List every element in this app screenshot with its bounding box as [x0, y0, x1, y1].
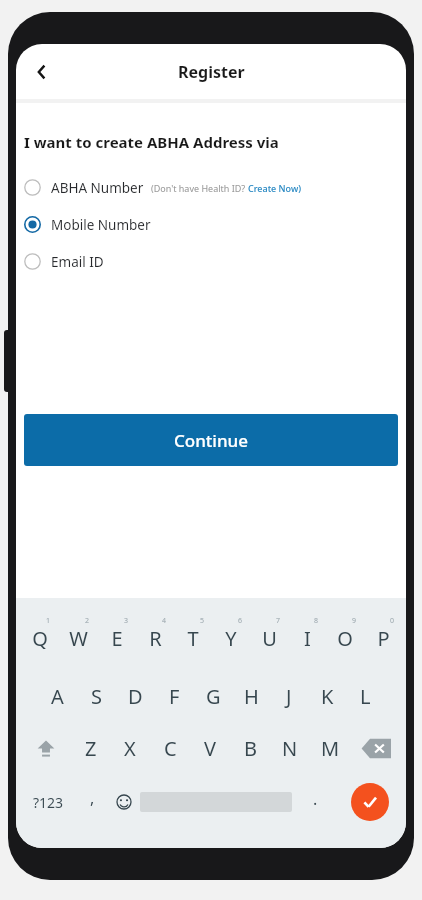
staticText: 8	[314, 616, 319, 626]
staticText: E	[111, 625, 123, 652]
button[interactable]: Create Now)	[248, 182, 301, 194]
button[interactable]: Continue	[24, 414, 398, 466]
staticText: Z	[85, 735, 97, 762]
button[interactable]: 8	[288, 614, 326, 670]
staticText: 0	[390, 616, 395, 626]
button[interactable]: H	[232, 670, 270, 722]
button[interactable]: Emoji	[108, 774, 140, 830]
button[interactable]: 0	[364, 614, 402, 670]
staticText: 1	[46, 616, 51, 626]
staticText: J	[286, 683, 292, 710]
staticText: N	[282, 735, 298, 762]
staticText: P	[377, 625, 390, 652]
staticText: S	[91, 683, 102, 710]
staticText: H	[244, 683, 259, 710]
staticText: ABHA Number	[51, 179, 144, 197]
button[interactable]: Z	[71, 722, 110, 774]
button[interactable]: Mobile Number	[16, 206, 406, 243]
staticText: F	[169, 683, 180, 710]
staticText: U	[262, 625, 277, 652]
button[interactable]: Space	[140, 774, 292, 830]
staticText: Mobile Number	[51, 216, 151, 234]
button[interactable]: 3	[98, 614, 136, 670]
staticText: 2	[85, 616, 90, 626]
button[interactable]: 6	[212, 614, 250, 670]
button[interactable]: X	[110, 722, 150, 774]
staticText: D	[128, 683, 143, 710]
button[interactable]: J	[270, 670, 308, 722]
button[interactable]: L	[346, 670, 384, 722]
staticText: G	[206, 683, 221, 710]
button[interactable]: 9	[326, 614, 364, 670]
staticText: A	[51, 683, 64, 710]
staticText: 9	[352, 616, 357, 626]
button[interactable]: 5	[174, 614, 212, 670]
button[interactable]: N	[270, 722, 310, 774]
button[interactable]: G	[194, 670, 232, 722]
staticText: Q	[32, 625, 48, 652]
staticText: O	[337, 625, 353, 652]
button[interactable]: Shift	[20, 722, 71, 774]
staticText: V	[204, 735, 216, 762]
staticText: 3	[124, 616, 129, 626]
staticText: 6	[238, 616, 243, 626]
staticText: Register	[178, 61, 245, 83]
staticText: ,	[90, 787, 95, 809]
staticText: I	[304, 625, 311, 652]
staticText: 7	[276, 616, 281, 626]
button[interactable]: Backspace	[350, 722, 402, 774]
staticText: T	[187, 625, 199, 652]
staticText: B	[244, 735, 257, 762]
button[interactable]: ,	[76, 774, 108, 830]
button[interactable]: Enter	[351, 783, 389, 821]
button[interactable]: 1	[20, 614, 59, 670]
button[interactable]: ABHA Number	[16, 169, 406, 206]
button[interactable]: 4	[136, 614, 174, 670]
staticText: Email ID	[51, 253, 104, 271]
button[interactable]: .	[292, 774, 338, 830]
button[interactable]: M	[310, 722, 350, 774]
staticText: (Don't have Health ID?	[151, 182, 248, 194]
staticText: ?123	[33, 793, 64, 812]
button[interactable]: ?123	[20, 774, 76, 830]
staticText: .	[313, 788, 318, 810]
staticText: Y	[225, 625, 237, 652]
staticText: M	[321, 735, 340, 762]
button[interactable]: V	[190, 722, 230, 774]
staticText: I want to create ABHA Address via	[24, 132, 279, 152]
button[interactable]: B	[230, 722, 270, 774]
staticText: Continue	[174, 429, 249, 452]
button[interactable]: 2	[59, 614, 98, 670]
button[interactable]: Email ID	[16, 243, 406, 280]
staticText: C	[164, 735, 177, 762]
button[interactable]: D	[116, 670, 155, 722]
button[interactable]: Back	[20, 50, 64, 94]
button[interactable]: A	[38, 670, 77, 722]
staticText: X	[124, 735, 136, 762]
button[interactable]: K	[308, 670, 346, 722]
button[interactable]: F	[155, 670, 194, 722]
staticText: L	[360, 683, 371, 710]
staticText: 4	[162, 616, 167, 626]
button[interactable]: 7	[250, 614, 288, 670]
staticText: W	[69, 625, 88, 652]
staticText: R	[149, 625, 162, 652]
staticText: K	[321, 683, 334, 710]
staticText: 5	[200, 616, 205, 626]
button[interactable]: S	[77, 670, 116, 722]
button[interactable]: C	[150, 722, 190, 774]
